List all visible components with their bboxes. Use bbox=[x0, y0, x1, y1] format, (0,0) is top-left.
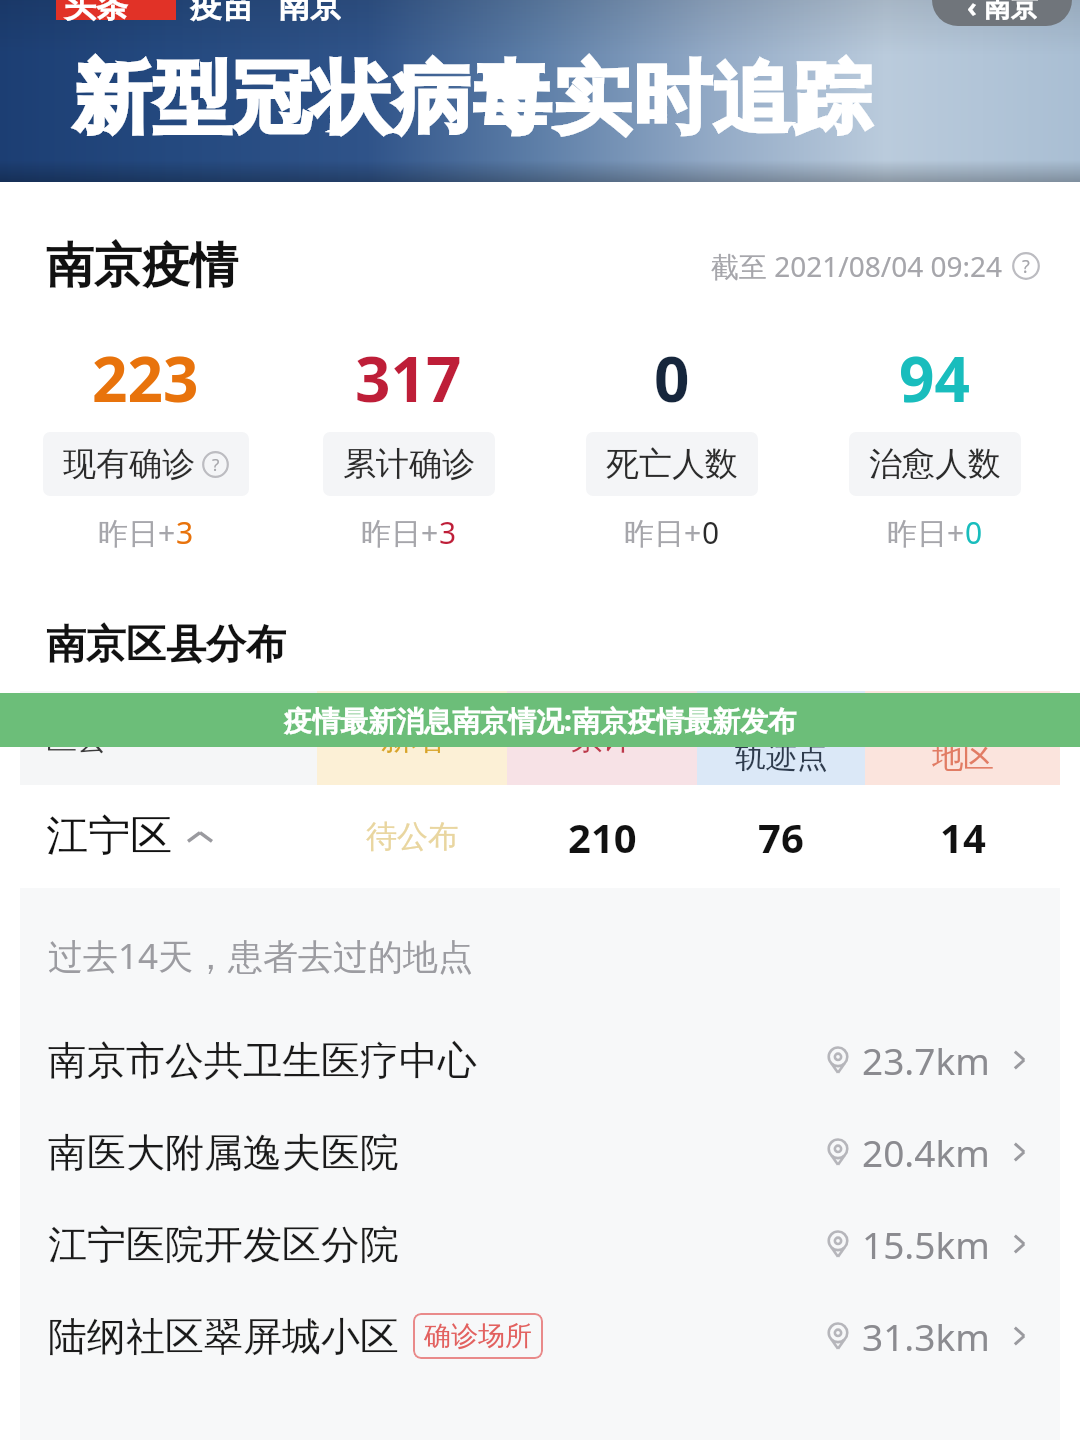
staticText: 0 bbox=[654, 336, 690, 420]
staticText: 过去14天，患者去过的地点 bbox=[48, 932, 474, 980]
staticText: 确诊场所 bbox=[424, 1319, 532, 1353]
staticText: 昨日+ bbox=[98, 512, 176, 553]
staticText: 陆纲社区翠屏城小区 bbox=[48, 1312, 399, 1361]
staticText: 20.4km bbox=[862, 1127, 990, 1177]
staticText: 14 bbox=[940, 810, 986, 864]
button[interactable]: 选择城市 南京 bbox=[932, 0, 1072, 26]
staticText: 治愈人数 bbox=[869, 443, 1001, 485]
staticText: 0 bbox=[702, 512, 720, 553]
staticText: 截至 2021/08/04 09:24 bbox=[711, 247, 1003, 285]
staticText: 76 bbox=[758, 810, 804, 864]
staticText: 累计 bbox=[571, 719, 633, 758]
staticText: 317 bbox=[355, 336, 462, 420]
staticText: 31.3km bbox=[862, 1311, 990, 1361]
button[interactable]: 南医大附属逸夫医院 bbox=[20, 1106, 1060, 1198]
staticText: 223 bbox=[92, 336, 199, 420]
staticText: ‹ 南京 bbox=[967, 0, 1038, 25]
button[interactable]: 陆纲社区翠屏城小区 bbox=[20, 1290, 1060, 1382]
staticText: 新型冠状病毒实时追踪 bbox=[72, 50, 872, 148]
staticText: 待公布 bbox=[366, 817, 459, 856]
staticText: 南京 bbox=[278, 0, 342, 26]
staticText: 中高风险 地区 bbox=[901, 701, 1025, 776]
staticText: 现有确诊 bbox=[63, 443, 195, 485]
staticText: 3 bbox=[439, 512, 457, 553]
staticText: 江宁区 bbox=[46, 810, 172, 863]
staticText: 头条 bbox=[64, 0, 128, 26]
staticText: 昨日+ bbox=[887, 512, 965, 553]
staticText: 患者 轨迹点 bbox=[735, 701, 828, 776]
staticText: 疫情最新消息南京情况:南京疫情最新发布 bbox=[284, 701, 796, 739]
staticText: 疫苗 bbox=[190, 0, 254, 26]
staticText: 死亡人数 bbox=[606, 443, 738, 485]
staticText: 区县 bbox=[46, 719, 108, 758]
button[interactable]: 江宁区 bbox=[20, 785, 1060, 888]
staticText: 94 bbox=[899, 336, 970, 420]
staticText: 15.5km bbox=[862, 1219, 990, 1269]
button[interactable]: 数据说明 bbox=[1012, 252, 1040, 280]
staticText: ? bbox=[212, 453, 220, 476]
staticText: 南医大附属逸夫医院 bbox=[48, 1128, 399, 1177]
button[interactable]: 南京市公共卫生医疗中心 bbox=[20, 1014, 1060, 1106]
staticText: ? bbox=[1022, 254, 1030, 279]
staticText: 南京区县分布 bbox=[46, 619, 286, 669]
staticText: 南京疫情 bbox=[46, 236, 238, 296]
staticText: 210 bbox=[568, 810, 637, 864]
staticText: 江宁医院开发区分院 bbox=[48, 1220, 399, 1269]
staticText: 昨日+ bbox=[361, 512, 439, 553]
staticText: 3 bbox=[176, 512, 194, 553]
staticText: 23.7km bbox=[862, 1035, 990, 1085]
staticText: 累计确诊 bbox=[343, 443, 475, 485]
staticText: 昨日+ bbox=[624, 512, 702, 553]
staticText: 南京市公共卫生医疗中心 bbox=[48, 1036, 477, 1085]
staticText: 0 bbox=[965, 512, 983, 553]
staticText: 新增 bbox=[381, 719, 443, 758]
button[interactable]: 江宁医院开发区分院 bbox=[20, 1198, 1060, 1290]
